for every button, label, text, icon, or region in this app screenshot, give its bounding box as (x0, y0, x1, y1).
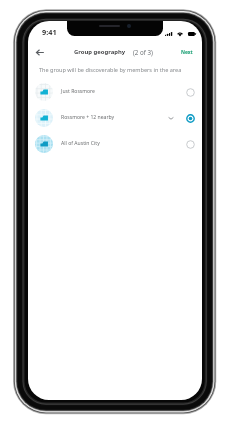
staticText: Rossmore + 12 nearby (61, 114, 115, 121)
staticText: (2 of 3) (133, 48, 153, 56)
button[interactable]: Back (30, 42, 50, 62)
button[interactable]: Next (178, 45, 196, 59)
staticText: Just Rossmore (61, 88, 95, 95)
staticText: Next (181, 49, 193, 56)
button[interactable]: Rossmore + 12 nearby (28, 105, 202, 130)
staticText: All of Austin City (61, 140, 100, 147)
button[interactable]: All of Austin City (28, 131, 202, 156)
staticText: 9:41 (42, 27, 57, 36)
staticText: Group geography (74, 48, 126, 56)
button[interactable]: Just Rossmore (28, 79, 202, 104)
staticText: The group will be discoverable by member… (39, 66, 182, 74)
